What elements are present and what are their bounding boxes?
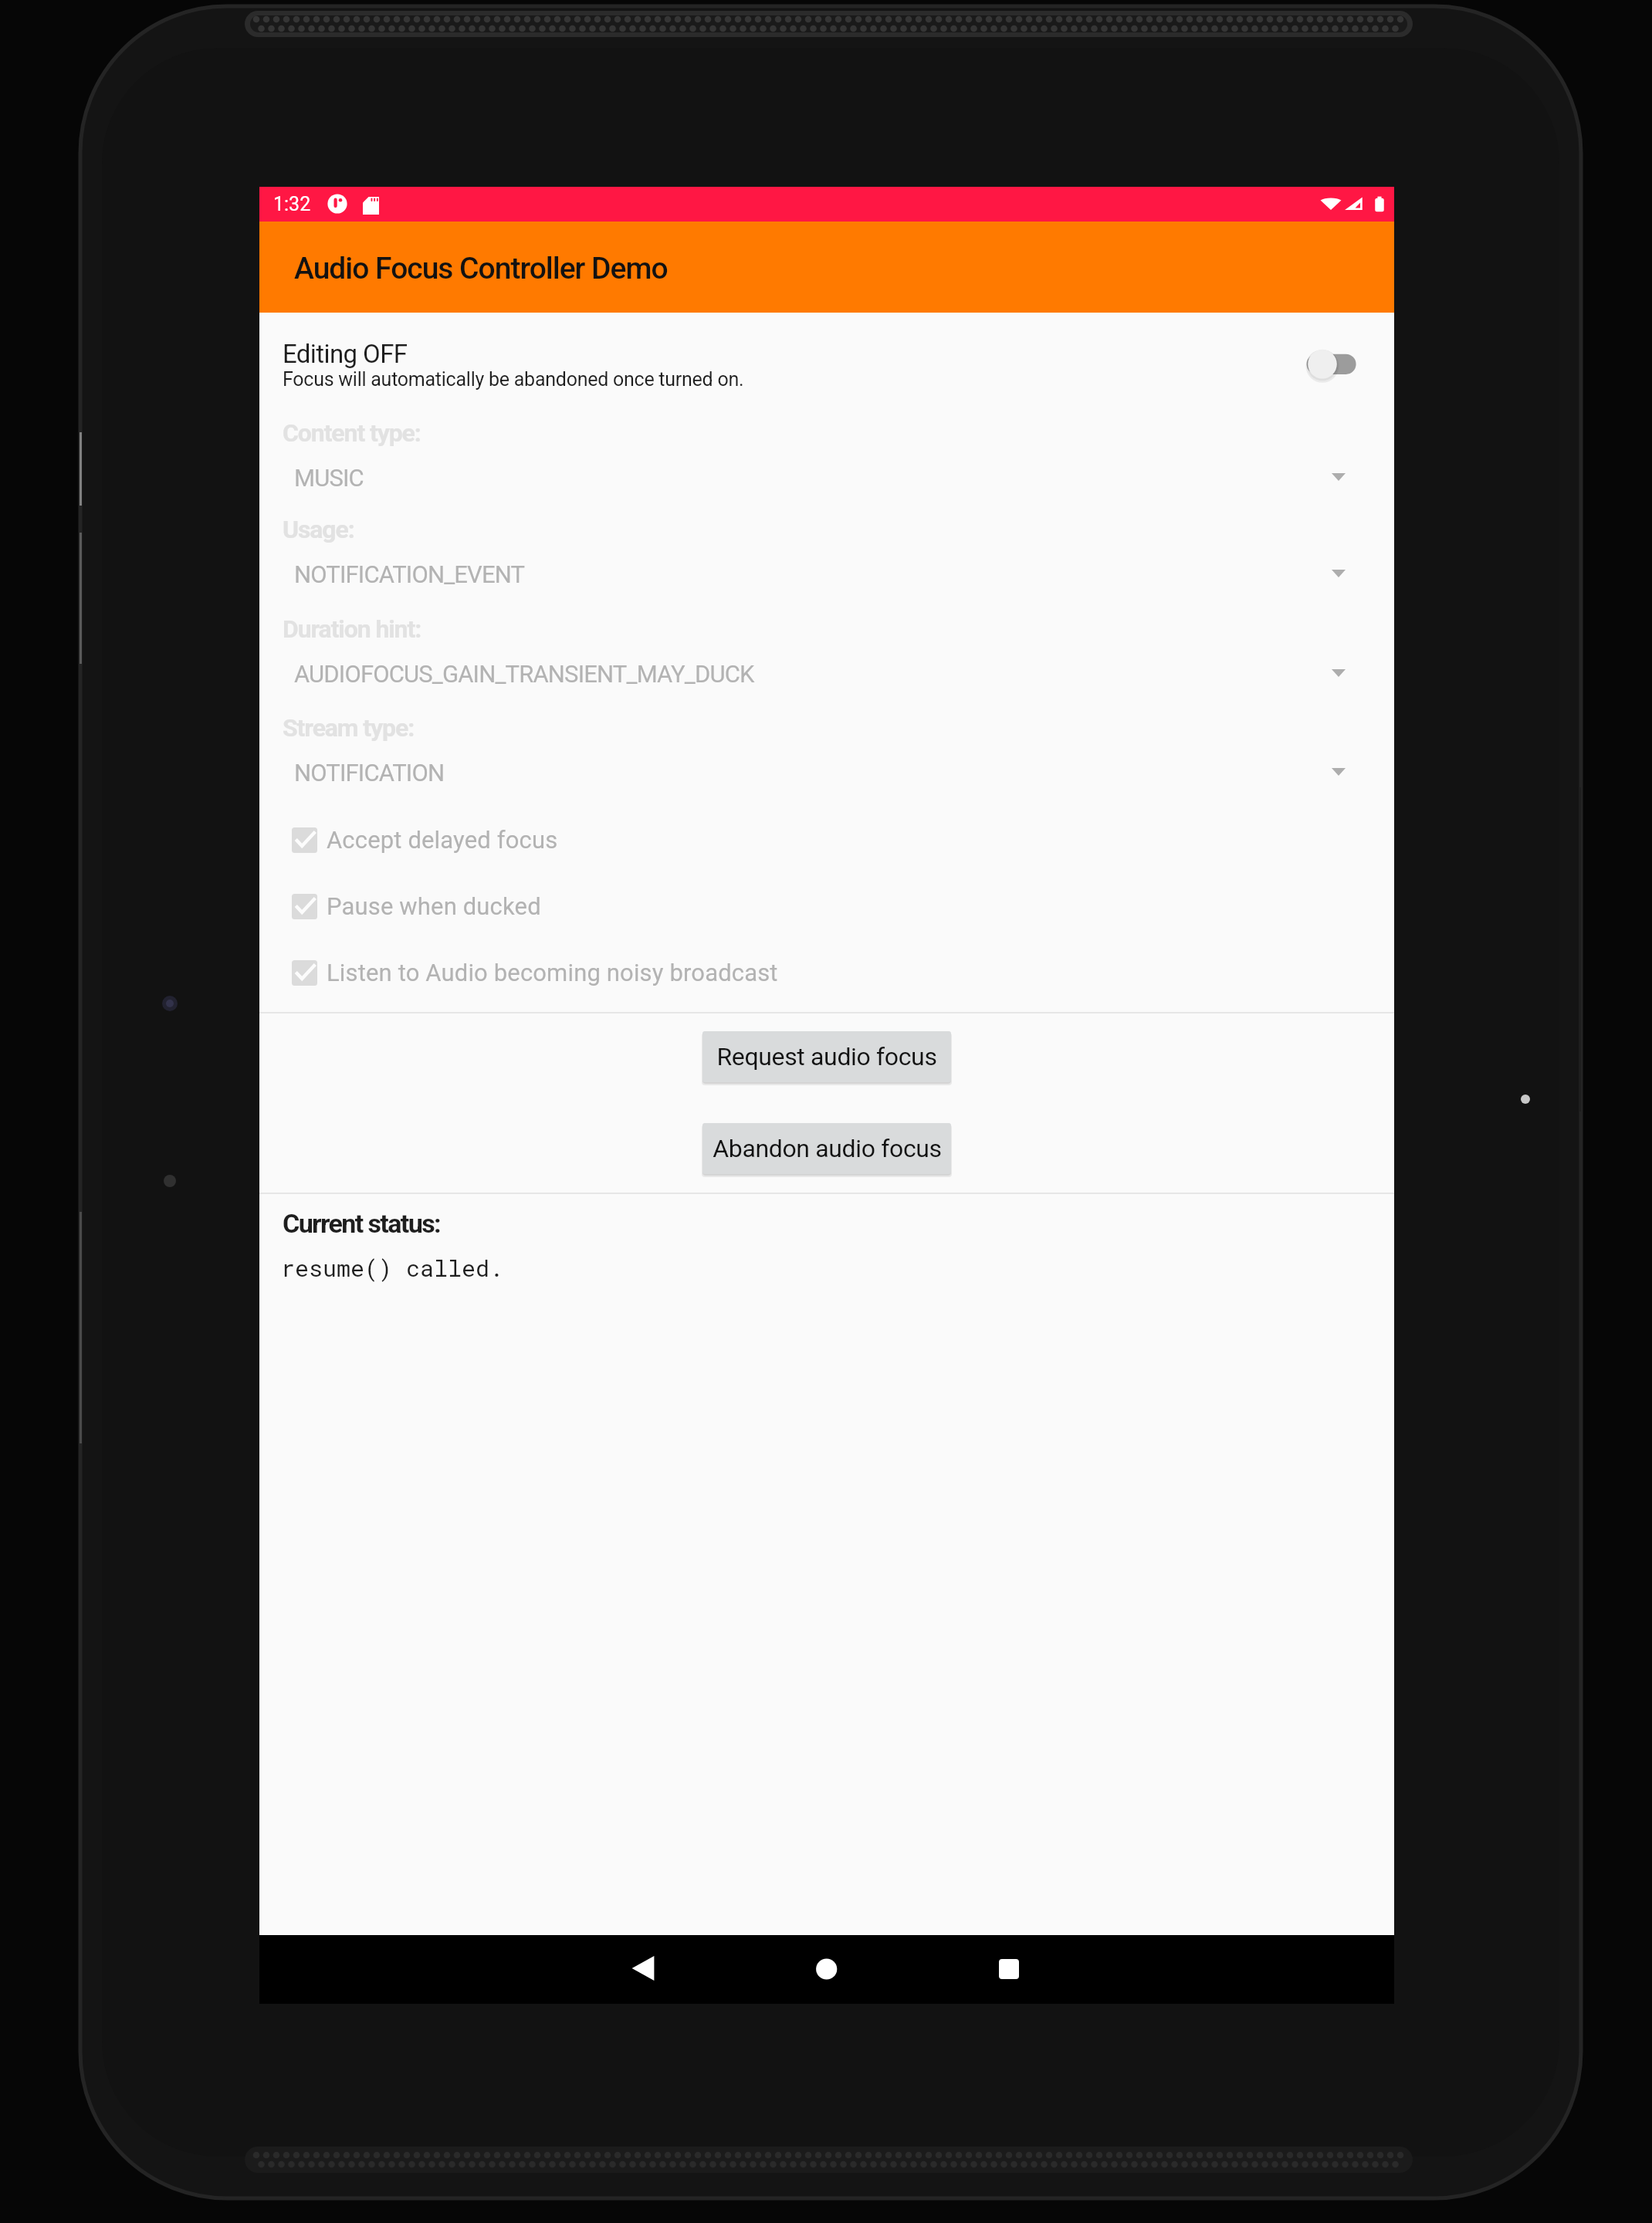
button[interactable]: Back [611,1944,676,1995]
button[interactable]: Content type: [259,413,1394,512]
staticText: AUDIOFOCUS_GAIN_TRANSIENT_MAY_DUCK [294,660,754,688]
staticText: resume() called. [281,1253,504,1284]
button[interactable]: Usage: [259,509,1394,608]
staticText: Focus will automatically be abandoned on… [283,368,744,391]
button[interactable]: Listen to Audio becoming noisy broadcast [259,939,1394,1006]
staticText: Content type: [283,418,421,448]
staticText: Abandon audio focus [713,1134,942,1163]
button[interactable]: Editing OFF [259,320,1394,401]
staticText: 1:32 [273,193,311,215]
staticText: Current status: [283,1208,441,1239]
staticText: Listen to Audio becoming noisy broadcast [327,959,778,986]
button[interactable]: Accept delayed focus [259,807,1394,873]
button[interactable]: Pause when ducked [259,873,1394,939]
button[interactable]: Toggle editing [1286,341,1360,392]
staticText: Usage: [283,515,354,544]
staticText: MUSIC [294,464,364,492]
button[interactable]: Recent apps [977,1944,1042,1995]
staticText: Editing OFF [283,339,408,369]
button[interactable]: Abandon audio focus [702,1123,951,1174]
staticText: Pause when ducked [327,892,541,920]
button[interactable]: Stream type: [259,708,1394,807]
button[interactable]: Request audio focus [702,1031,951,1082]
staticText: NOTIFICATION_EVENT [294,560,525,588]
staticText: Audio Focus Controller Demo [294,251,668,286]
staticText: NOTIFICATION [294,759,445,787]
staticText: Request audio focus [716,1042,937,1071]
staticText: Stream type: [283,713,415,743]
button[interactable]: Duration hint: [259,609,1394,708]
staticText: Accept delayed focus [327,826,558,854]
staticText: Duration hint: [283,614,421,644]
button[interactable]: Home [794,1944,860,1995]
